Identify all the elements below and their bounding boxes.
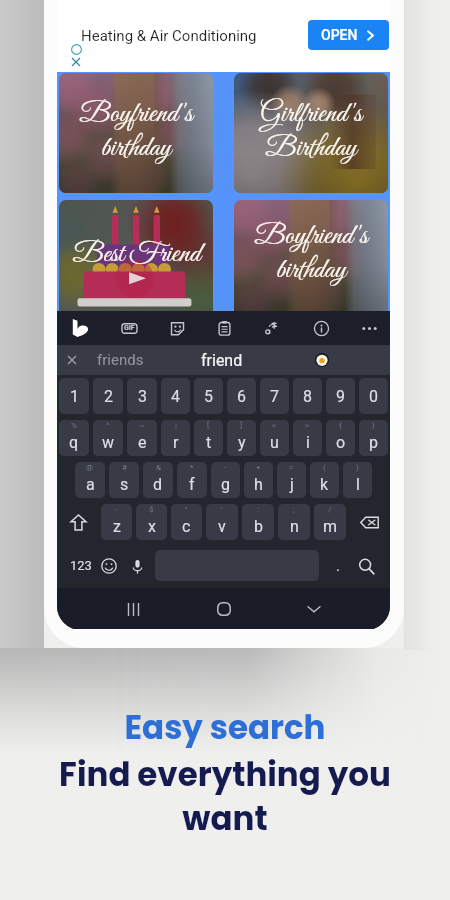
button[interactable]: Search [351,551,381,581]
staticText: u [270,433,279,452]
button[interactable]: 8 [293,378,322,414]
staticText: ( [323,463,326,472]
button[interactable]: Backspace [348,501,390,543]
button[interactable]: 4 [161,378,190,414]
staticText: 7 [270,387,279,406]
button[interactable]: ; [278,504,310,540]
button[interactable]: Stickers [165,316,189,340]
button[interactable]: * [177,462,207,498]
button[interactable]: Emoji [97,554,121,578]
staticText: $ [149,505,154,514]
staticText: e [138,433,147,452]
button[interactable]: Boyfriend's birthday [234,200,388,311]
staticText: % [71,421,77,430]
staticText: 0 [369,387,378,406]
button[interactable]: Info [309,316,333,340]
button[interactable]: [ [194,420,223,456]
button[interactable]: / [314,504,346,540]
button[interactable]: GIF keyboard [117,316,141,340]
staticText: 2 [104,387,113,406]
staticText: > [305,421,310,430]
button[interactable]: } [359,420,388,456]
button[interactable]: ^ [93,420,123,456]
staticText: Boyfriend's birthday [79,96,193,167]
button[interactable]: : [242,504,274,540]
button[interactable]: Best Friend [59,200,213,311]
staticText: friends [97,351,144,369]
staticText: & [156,463,161,472]
staticText: q [69,433,79,452]
button[interactable]: = [277,462,306,498]
staticText: x [148,517,156,536]
button[interactable]: Collapse suggestions [66,354,78,366]
button[interactable]: + [244,462,273,498]
staticText: w [102,433,115,452]
staticText: i [306,433,310,452]
staticText: ^ [106,421,110,430]
button[interactable]: Shift [57,501,99,543]
button[interactable]: 3 [127,378,157,414]
button[interactable]: OPEN [308,20,389,50]
staticText: @ [86,463,94,472]
button[interactable]: ) [343,462,372,498]
button[interactable]: % [59,420,89,456]
button[interactable]: Emoji suggestion [315,353,329,367]
button[interactable]: Bing search [68,316,92,340]
button[interactable]: - [101,504,132,540]
button[interactable]: ( [310,462,339,498]
button[interactable]: @ [75,462,105,498]
button[interactable]: 5 [194,378,223,414]
button[interactable]: 6 [227,378,256,414]
button[interactable]: 123 [68,543,94,588]
staticText: t [206,433,212,452]
button[interactable]: 1 [59,378,89,414]
staticText: } [372,421,375,430]
staticText: * [190,463,194,472]
button[interactable]: $ [136,504,167,540]
button[interactable]: Hide keyboard [299,594,329,624]
button[interactable]: " [171,504,202,540]
staticText: m [323,517,338,536]
button[interactable]: # [109,462,139,498]
staticText: Boyfriend's birthday [254,218,368,289]
staticText: l [356,475,360,494]
button[interactable]: 7 [260,378,289,414]
staticText: f [189,475,195,494]
button[interactable]: Home [209,594,239,624]
staticText: - [224,463,227,472]
button[interactable]: 0 [359,378,388,414]
staticText: d [153,475,163,494]
button[interactable]: Translate [260,316,284,340]
button[interactable]: < [260,420,289,456]
staticText: + [256,463,261,472]
button[interactable]: - [211,462,240,498]
button[interactable]: | [161,420,190,456]
button[interactable]: 2 [93,378,123,414]
button[interactable]: Voice input [125,554,149,578]
staticText: Easy search [0,705,450,751]
staticText: 3 [138,387,147,406]
button[interactable]: ~ [127,420,157,456]
button[interactable]: > [293,420,322,456]
staticText: - [115,505,118,514]
button[interactable]: { [326,420,355,456]
staticText: p [369,433,378,452]
button[interactable]: & [143,462,173,498]
staticText: ; [293,505,295,514]
button[interactable]: ' [206,504,238,540]
button[interactable]: ] [227,420,256,456]
button[interactable]: 9 [326,378,355,414]
staticText: k [320,475,329,494]
button[interactable]: Boyfriend's birthday [59,73,213,193]
staticText: Best Friend [72,236,201,272]
button[interactable]: Girlfriend's Birthday [234,73,388,193]
button[interactable]: Clipboard [212,316,236,340]
staticText: ] [240,421,243,430]
staticText: n [290,517,299,536]
button[interactable]: Recent apps [118,594,148,624]
staticText: | [175,421,177,430]
staticText: o [336,433,346,452]
button[interactable]: More options [357,316,381,340]
staticText: GIF [124,324,135,332]
